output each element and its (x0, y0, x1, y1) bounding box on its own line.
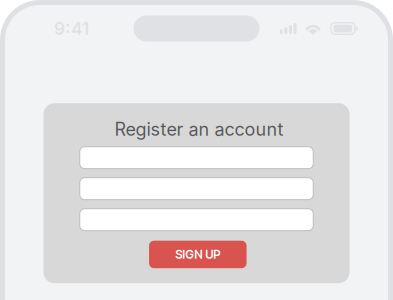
staticText: 9:41 (54, 18, 89, 39)
button[interactable]: Email (80, 178, 313, 200)
button[interactable]: Password (80, 209, 313, 231)
staticText: Register an account (114, 118, 283, 140)
staticText: SIGN UP (175, 247, 220, 262)
button[interactable]: Name (80, 147, 313, 169)
button[interactable]: SIGN UP (149, 241, 247, 268)
